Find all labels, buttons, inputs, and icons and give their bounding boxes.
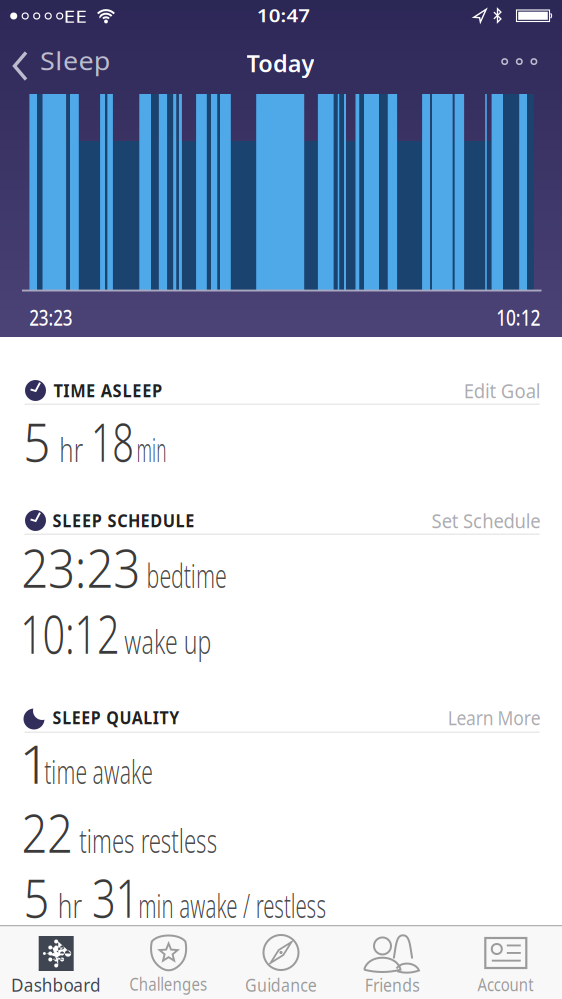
- button[interactable]: [450, 926, 562, 999]
- staticText: 18: [91, 406, 151, 476]
- staticText: Friends: [365, 973, 425, 996]
- staticText: 22: [21, 797, 81, 867]
- staticText: time awake: [44, 749, 215, 793]
- staticText: Today: [247, 48, 311, 78]
- staticText: 5: [23, 406, 53, 476]
- staticText: TIME ASLEEP: [53, 379, 168, 402]
- staticText: Challenges: [129, 972, 219, 995]
- staticText: Dashboard: [11, 973, 102, 996]
- staticText: 10:47: [257, 4, 302, 27]
- button[interactable]: [410, 500, 550, 540]
- staticText: min: [136, 427, 194, 471]
- staticText: 1: [19, 728, 49, 798]
- button[interactable]: [430, 698, 550, 738]
- staticText: Account: [477, 973, 542, 996]
- staticText: Learn More: [448, 704, 554, 731]
- staticText: 10:12: [496, 303, 550, 332]
- staticText: 31: [92, 862, 152, 932]
- button[interactable]: [430, 370, 550, 410]
- staticText: times restless: [79, 818, 286, 862]
- staticText: wake up: [124, 619, 250, 663]
- staticText: 23:23: [21, 532, 154, 602]
- button[interactable]: [225, 926, 337, 999]
- staticText: Edit Goal: [464, 377, 547, 404]
- staticText: Set Schedule: [432, 507, 550, 534]
- staticText: hr: [59, 427, 92, 471]
- button[interactable]: [112, 926, 225, 999]
- staticText: SLEEP QUALITY: [53, 706, 190, 729]
- staticText: bedtime: [147, 553, 272, 597]
- staticText: Guidance: [245, 973, 323, 996]
- staticText: SLEEP SCHEDULE: [53, 509, 204, 532]
- staticText: 10:12: [20, 598, 153, 668]
- button[interactable]: [489, 46, 549, 76]
- button[interactable]: [0, 34, 120, 90]
- staticText: 5: [24, 862, 54, 932]
- staticText: hr: [58, 883, 91, 927]
- staticText: min awake / restless: [138, 883, 445, 927]
- staticText: Sleep: [40, 44, 106, 77]
- button[interactable]: [0, 926, 112, 999]
- staticText: 23:23: [29, 303, 83, 332]
- staticText: EE: [63, 6, 81, 27]
- button[interactable]: [337, 926, 450, 999]
